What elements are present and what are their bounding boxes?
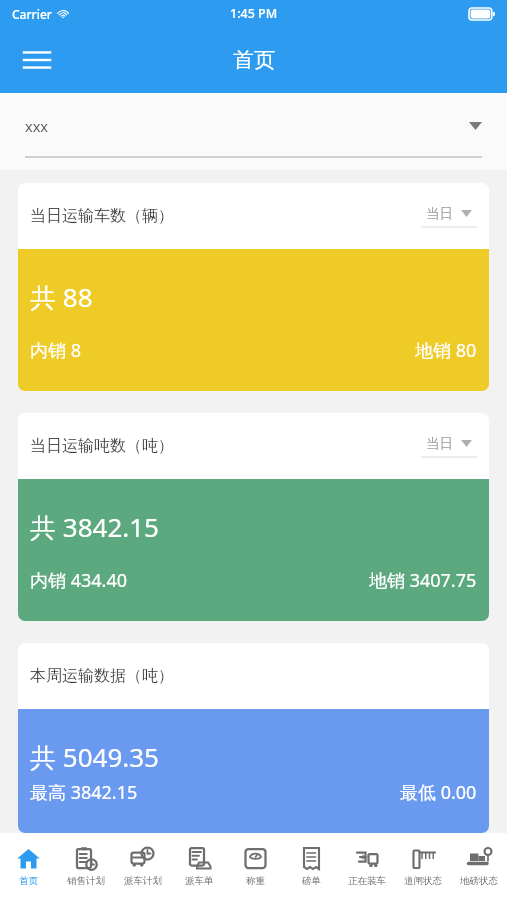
button[interactable]: 称重 <box>227 833 283 900</box>
button[interactable]: 销售计划 <box>57 833 114 900</box>
staticText: 当日运输车数（辆） <box>30 206 174 226</box>
staticText: 正在装车 <box>348 875 386 887</box>
staticText: 本周运输数据（吨） <box>30 666 174 686</box>
staticText: 磅单 <box>302 875 321 887</box>
button[interactable]: 本周运输数据（吨） <box>18 643 489 833</box>
staticText: 最低 0.00 <box>400 780 477 805</box>
button[interactable]: 道闸状态 <box>395 833 451 900</box>
button[interactable]: 地磅状态 <box>451 833 507 900</box>
staticText: 销售计划 <box>67 875 105 887</box>
staticText: 最高 3842.15 <box>30 780 138 805</box>
button[interactable]: Menu <box>14 37 60 83</box>
staticText: 地销 3407.75 <box>369 568 477 593</box>
staticText: 地磅状态 <box>460 875 498 887</box>
staticText: 首页 <box>19 875 38 887</box>
staticText: 首页 <box>233 47 275 73</box>
button[interactable]: 当日运输吨数（吨） <box>18 413 489 621</box>
button[interactable]: 当日 <box>421 205 477 228</box>
button[interactable]: 当日 <box>421 435 477 458</box>
staticText: 1:45 PM <box>230 5 278 22</box>
button[interactable]: 正在装车 <box>339 833 395 900</box>
staticText: 共 88 <box>30 279 93 315</box>
button[interactable]: 派车单 <box>171 833 227 900</box>
staticText: 地销 80 <box>415 338 477 363</box>
staticText: 派车单 <box>185 875 214 887</box>
button[interactable]: 首页 <box>0 833 57 900</box>
staticText: 派车计划 <box>124 875 162 887</box>
staticText: 称重 <box>246 875 265 887</box>
staticText: 内销 8 <box>30 338 81 363</box>
staticText: Carrier <box>12 6 52 22</box>
staticText: 共 5049.35 <box>30 739 159 775</box>
staticText: 道闸状态 <box>404 875 442 887</box>
button[interactable]: xxx <box>25 106 482 158</box>
staticText: 当日 <box>426 205 453 222</box>
staticText: 当日运输吨数（吨） <box>30 436 174 456</box>
button[interactable]: 派车计划 <box>114 833 171 900</box>
button[interactable]: 当日运输车数（辆） <box>18 183 489 391</box>
staticText: 内销 434.40 <box>30 568 127 593</box>
button[interactable]: 磅单 <box>283 833 339 900</box>
staticText: 共 3842.15 <box>30 509 159 545</box>
staticText: 当日 <box>426 435 453 452</box>
staticText: xxx <box>25 116 49 136</box>
